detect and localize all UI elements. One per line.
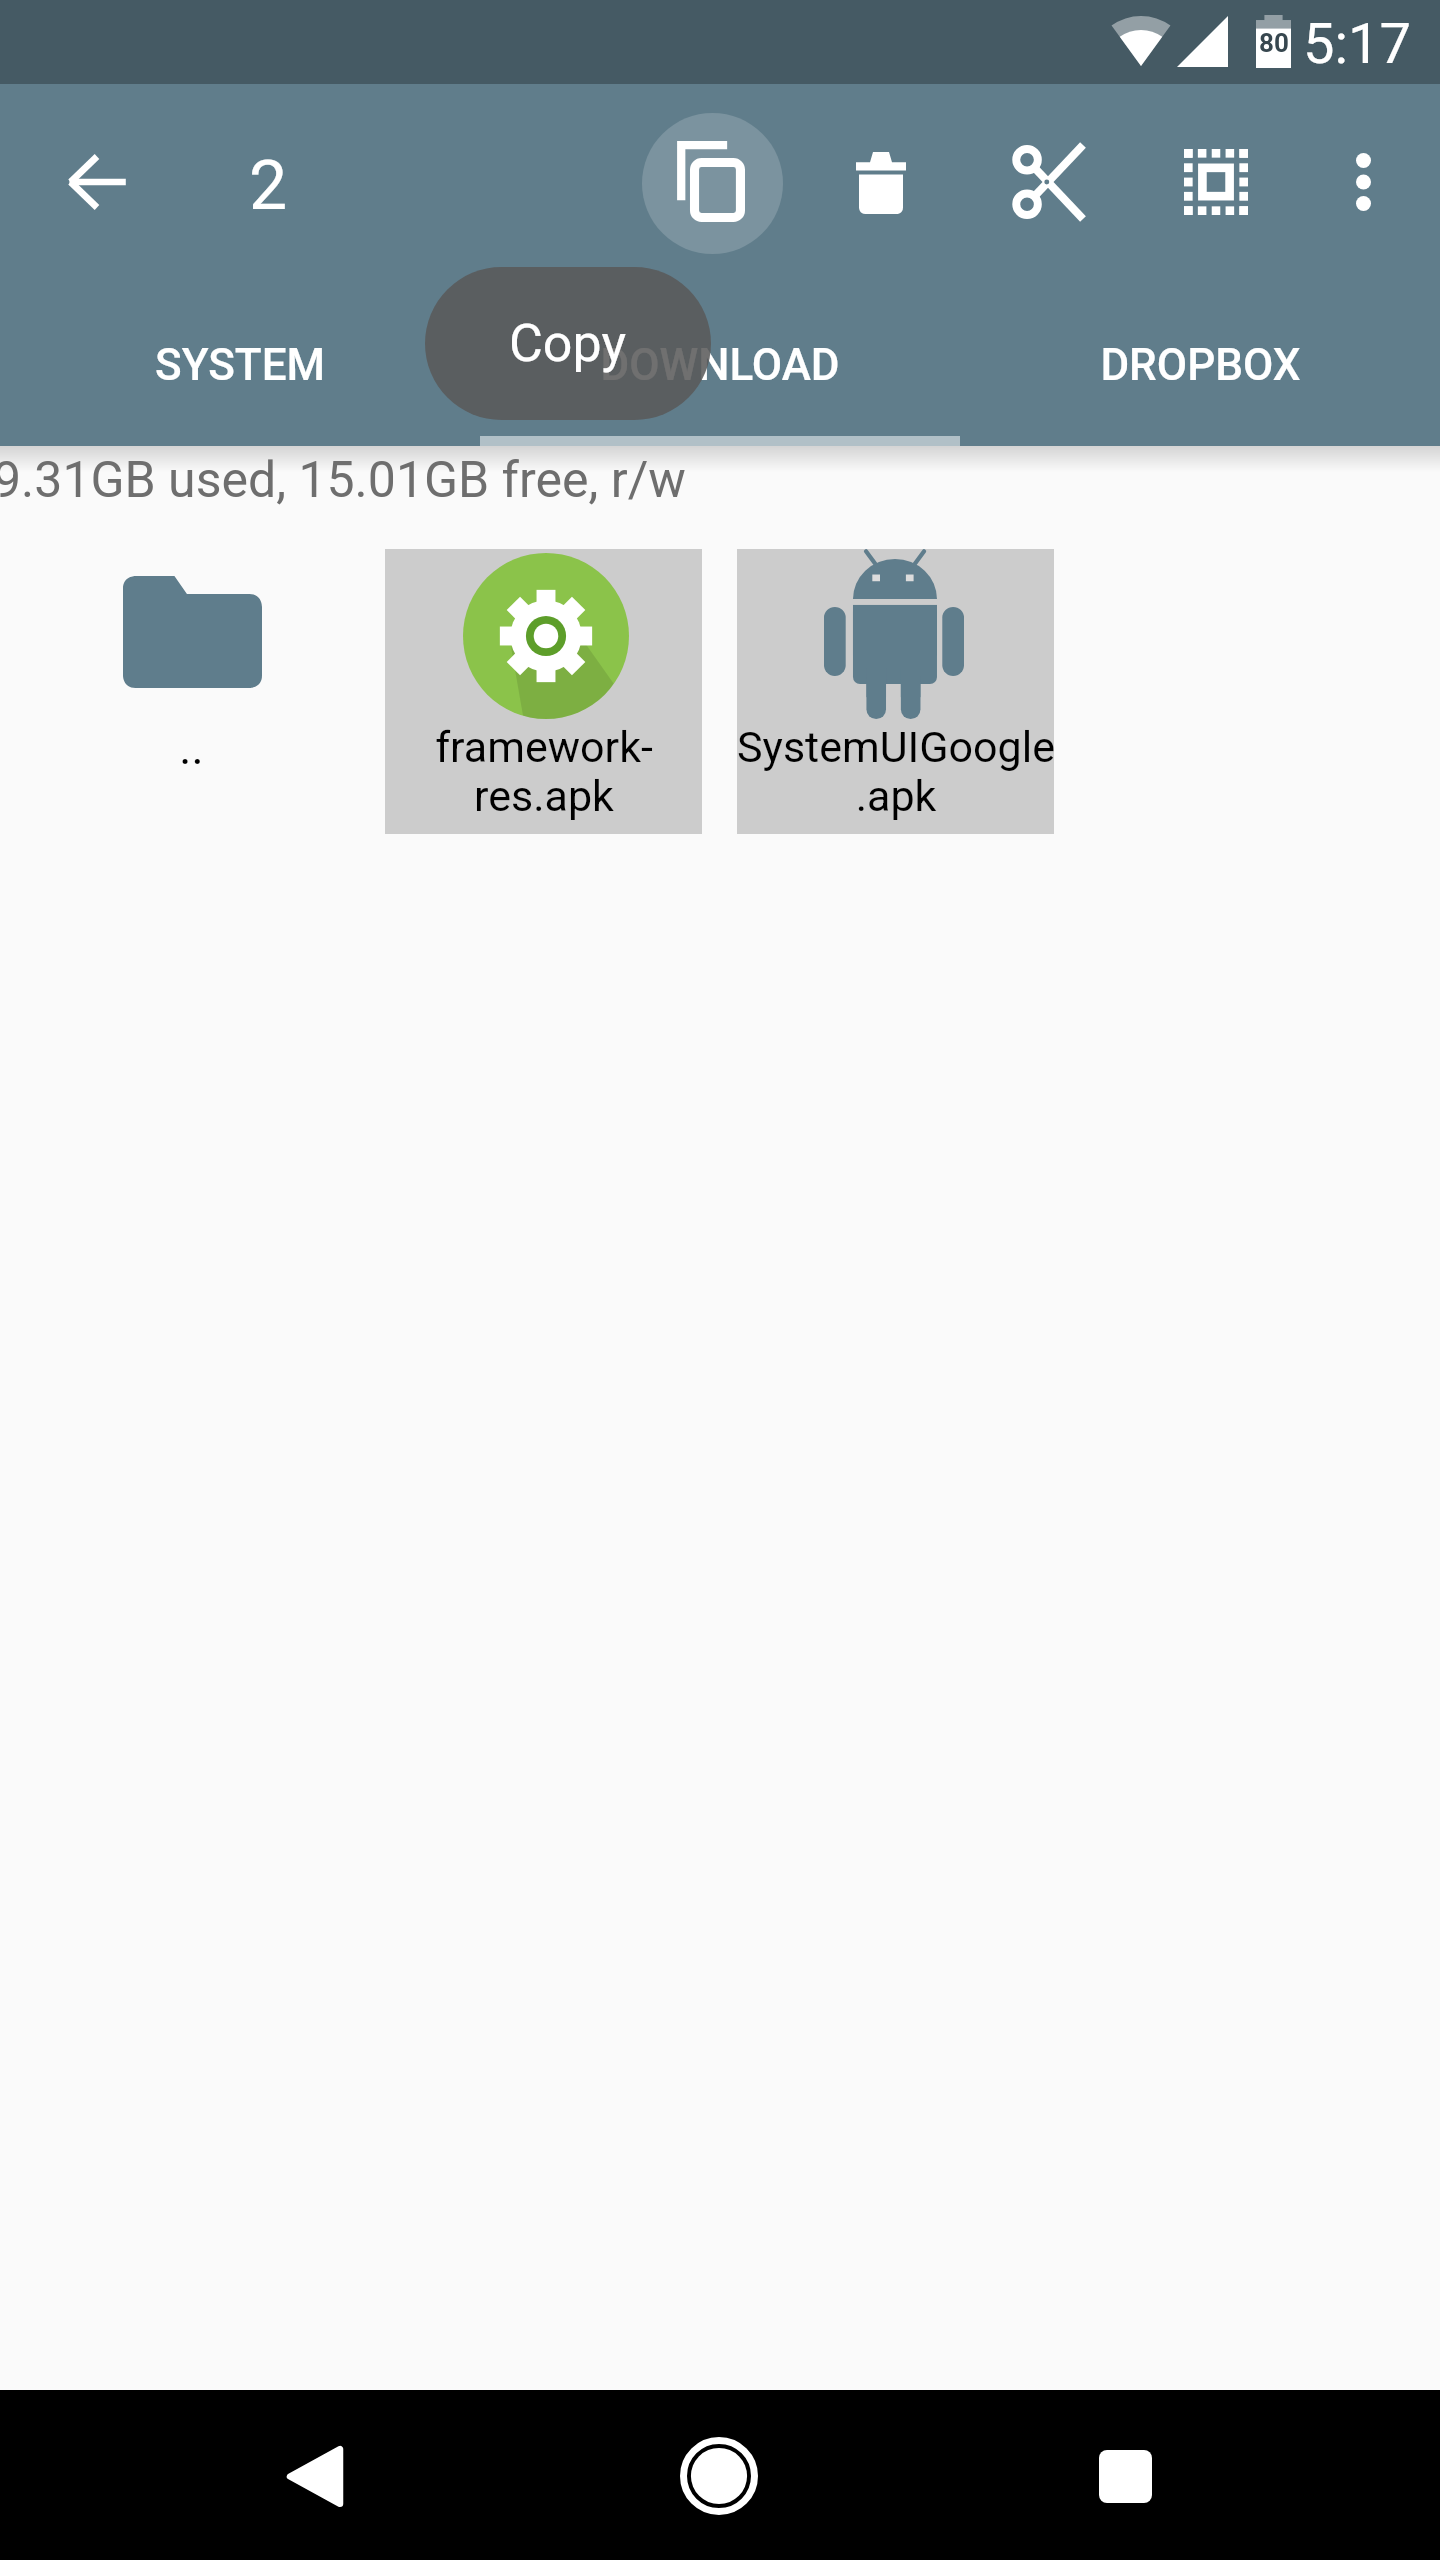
staticText: Copy xyxy=(509,313,627,374)
button[interactable]: Select all xyxy=(1134,100,1298,264)
staticText: 9.31GB used, 15.01GB free, r/w xyxy=(0,451,686,510)
button[interactable]: framework- res.apk xyxy=(385,549,702,834)
button[interactable]: SYSTEM xyxy=(0,282,480,448)
staticText: SystemUIGoogle .apk xyxy=(737,722,1054,821)
staticText: 2 xyxy=(249,146,288,226)
button[interactable]: Home xyxy=(644,2401,794,2551)
button[interactable]: Back xyxy=(240,2401,390,2551)
button[interactable]: More options xyxy=(1281,100,1440,264)
button[interactable]: DROPBOX xyxy=(960,282,1440,448)
button[interactable]: Delete xyxy=(799,99,963,263)
staticText: framework- res.apk xyxy=(435,722,653,821)
staticText: 80 xyxy=(1259,28,1289,58)
button[interactable]: DOWNLOAD xyxy=(480,282,960,448)
staticText: 5:17 xyxy=(1303,11,1411,77)
staticText: SYSTEM xyxy=(155,339,325,391)
button[interactable]: .. xyxy=(33,549,350,834)
staticText: DROPBOX xyxy=(1100,339,1301,391)
button[interactable]: Copy xyxy=(630,101,794,265)
staticText: .. xyxy=(179,721,204,775)
button[interactable]: SystemUIGoogle .apk xyxy=(737,549,1054,834)
button[interactable]: Cut xyxy=(965,100,1129,264)
button[interactable]: Back xyxy=(15,100,179,264)
staticText: DOWNLOAD xyxy=(600,339,840,391)
button[interactable]: Recent apps xyxy=(1050,2401,1200,2551)
